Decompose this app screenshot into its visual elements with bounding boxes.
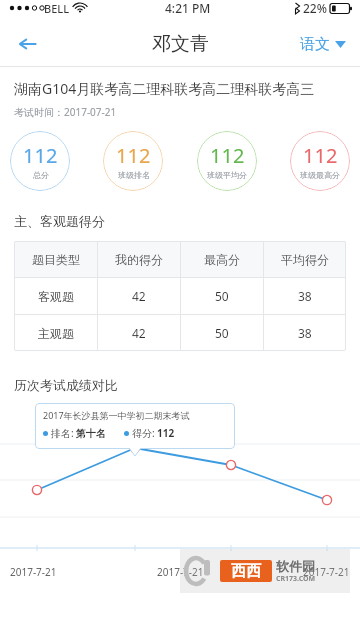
staticText: 主、客观题得分 [14, 213, 105, 229]
button[interactable]: 112 [197, 131, 257, 191]
staticText: 客观题 [38, 289, 74, 304]
staticText: 22% [303, 0, 327, 16]
staticText: 主观题 [38, 326, 74, 341]
staticText: 112 [210, 142, 245, 169]
staticText: 班级平均分 [207, 170, 247, 180]
staticText: 软件园 [276, 558, 315, 574]
staticText: 历次考试成绩对比 [14, 377, 118, 393]
staticText: 平均得分 [281, 252, 329, 267]
staticText: 2017-7-21 [157, 565, 204, 579]
staticText: 班级最高分 [300, 170, 340, 180]
staticText: CR173.COM [276, 574, 316, 584]
staticText: 2017年长沙县第一中学初二期末考试 [43, 409, 190, 421]
staticText: 112 [116, 142, 151, 169]
button[interactable]: 语文 [296, 27, 350, 62]
staticText: 38 [298, 325, 312, 341]
staticText: 50 [215, 325, 229, 341]
staticText: 排名: [51, 426, 74, 440]
staticText: 得分: [132, 426, 155, 440]
staticText: 4:21 PM [165, 0, 211, 16]
staticText: 112 [157, 426, 175, 440]
staticText: 邓文青 [152, 32, 209, 56]
staticText: 112 [303, 142, 338, 169]
staticText: 38 [298, 288, 312, 304]
button[interactable]: 112 [10, 131, 70, 191]
button[interactable]: 客观题 [14, 278, 346, 314]
staticText: 42 [132, 288, 146, 304]
staticText: 我的得分 [115, 252, 163, 267]
staticText: 第十名 [76, 427, 106, 440]
staticText: 考试时间：2017-07-21 [14, 105, 117, 119]
staticText: 西西 [231, 562, 261, 581]
staticText: 最高分 [204, 252, 240, 267]
button[interactable]: 2017年长沙县第一中学初二期末考试 [35, 403, 235, 449]
staticText: 2017-7-21 [303, 565, 350, 579]
button[interactable]: 112 [103, 131, 163, 191]
staticText: 总分 [33, 170, 49, 180]
staticText: 42 [132, 325, 146, 341]
staticText: 112 [23, 142, 58, 169]
staticText: 湖南G104月联考高二理科联考高二理科联考高三 [14, 79, 315, 98]
button[interactable]: Back [6, 22, 50, 66]
staticText: 题目类型 [32, 252, 80, 267]
button[interactable]: 112 [290, 131, 350, 191]
staticText: BELL [44, 1, 70, 16]
staticText: 2017-7-21 [10, 565, 57, 579]
staticText: 语文 [300, 35, 330, 54]
button[interactable]: 主观题 [14, 315, 346, 351]
staticText: 50 [215, 288, 229, 304]
staticText: 班级排名 [118, 170, 150, 180]
